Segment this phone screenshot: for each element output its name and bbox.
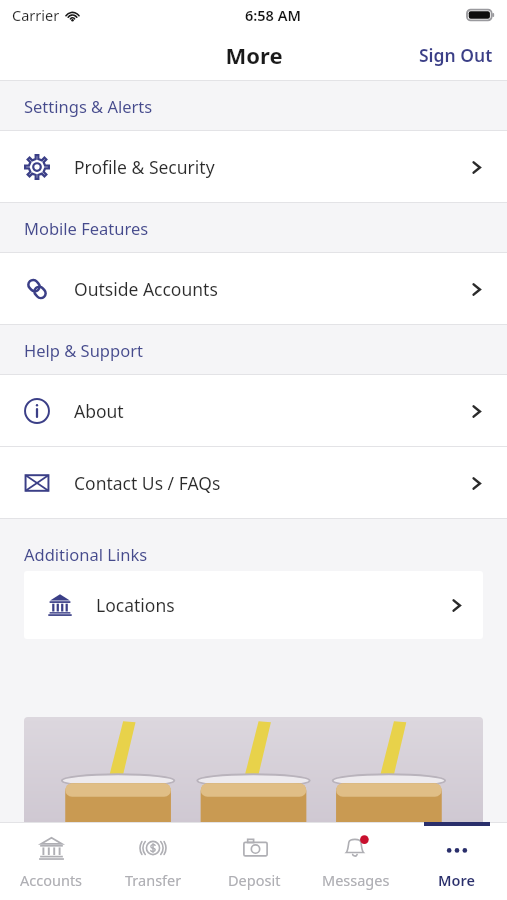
staticText: Help & Support <box>24 339 143 361</box>
staticText: Messages <box>322 870 390 890</box>
button[interactable]: More <box>406 822 507 900</box>
other: Open <box>468 281 485 298</box>
staticText: More <box>438 870 475 890</box>
staticText: Deposit <box>228 870 281 890</box>
staticText: Settings & Alerts <box>24 95 153 117</box>
staticText: Carrier <box>12 5 60 25</box>
button[interactable]: Contact Us / FAQs <box>0 447 507 519</box>
button[interactable]: Sign Out <box>405 35 507 75</box>
button[interactable]: Transfer <box>102 822 204 900</box>
other: Open <box>468 159 485 176</box>
button[interactable]: About <box>0 375 507 447</box>
staticText: Mobile Features <box>24 217 149 239</box>
other: Open <box>468 475 485 492</box>
staticText: Additional Links <box>24 543 148 565</box>
button[interactable]: Locations <box>24 571 483 639</box>
button[interactable]: Profile & Security <box>0 131 507 203</box>
button[interactable]: Deposit <box>204 822 305 900</box>
staticText: 6:58 AM <box>245 5 301 25</box>
other: Open <box>448 597 465 614</box>
button[interactable]: Messages <box>305 822 406 900</box>
staticText: About <box>74 399 124 423</box>
button[interactable]: Promotion <box>24 717 483 822</box>
staticText: Sign Out <box>419 43 493 67</box>
staticText: Transfer <box>125 870 182 890</box>
other: Open <box>468 403 485 420</box>
button[interactable]: Outside Accounts <box>0 253 507 325</box>
staticText: Contact Us / FAQs <box>74 471 221 495</box>
staticText: Accounts <box>20 870 83 890</box>
staticText: More <box>225 40 283 70</box>
staticText: Locations <box>96 593 175 617</box>
staticText: Profile & Security <box>74 155 215 179</box>
button[interactable]: Accounts <box>0 822 102 900</box>
staticText: Outside Accounts <box>74 277 218 301</box>
